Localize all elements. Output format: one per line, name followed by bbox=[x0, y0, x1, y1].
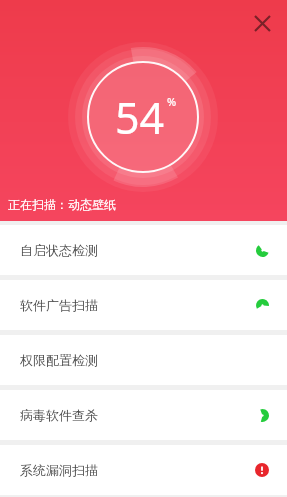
staticText: 系统漏洞扫描 bbox=[20, 462, 98, 478]
staticText: % bbox=[167, 94, 177, 109]
staticText: 自启状态检测 bbox=[20, 242, 98, 258]
staticText: 54 bbox=[115, 88, 165, 147]
button[interactable]: 软件广告扫描 bbox=[0, 280, 287, 330]
staticText: 病毒软件查杀 bbox=[20, 407, 98, 423]
button[interactable]: 病毒软件查杀 bbox=[0, 390, 287, 440]
button[interactable]: 系统漏洞扫描 bbox=[0, 445, 287, 495]
staticText: 正在扫描：动态壁纸 bbox=[8, 197, 116, 212]
button[interactable]: 自启状态检测 bbox=[0, 225, 287, 275]
button[interactable]: Close bbox=[245, 6, 279, 40]
staticText: 软件广告扫描 bbox=[20, 297, 98, 313]
button[interactable]: 权限配置检测 bbox=[0, 335, 287, 385]
staticText: 权限配置检测 bbox=[20, 352, 98, 368]
